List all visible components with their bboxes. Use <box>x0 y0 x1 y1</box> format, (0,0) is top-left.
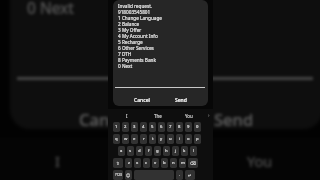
staticText: y <box>160 136 163 142</box>
staticText: 1 Change Language <box>118 15 162 21</box>
button[interactable]: The <box>142 113 173 119</box>
staticText: 0 <box>196 124 199 130</box>
staticText: l <box>193 148 195 154</box>
button[interactable]: 4 <box>140 122 147 132</box>
button[interactable]: a <box>118 146 125 156</box>
button[interactable]: More suggestions <box>204 112 213 119</box>
staticText: m <box>181 160 185 166</box>
button[interactable]: Emoji <box>125 170 132 180</box>
button[interactable]: z <box>125 158 132 168</box>
button[interactable]: b <box>161 158 168 168</box>
button[interactable]: n <box>170 158 177 168</box>
button[interactable]: Cancel <box>130 96 154 105</box>
button[interactable]: 6 <box>158 122 165 132</box>
button[interactable]: I <box>112 113 142 119</box>
staticText: The <box>154 113 162 119</box>
button[interactable]: u <box>167 134 174 144</box>
staticText: 0 Next <box>27 0 74 18</box>
staticText: 2 Balance <box>118 21 140 27</box>
staticText: 2 <box>124 124 127 130</box>
staticText: 0 Next <box>118 63 133 69</box>
staticText: 1 <box>115 124 118 130</box>
staticText: q <box>115 136 118 142</box>
button[interactable]: r <box>140 134 147 144</box>
button[interactable]: f <box>145 146 152 156</box>
staticText: o <box>187 136 190 142</box>
staticText: ↵ <box>188 173 192 178</box>
button[interactable]: t <box>149 134 156 144</box>
staticText: c <box>145 160 148 166</box>
staticText: w <box>124 136 128 142</box>
button[interactable]: d <box>136 146 143 156</box>
staticText: . <box>179 172 181 178</box>
staticText: Cancel <box>79 108 132 126</box>
staticText: 4 <box>142 124 145 130</box>
staticText: f <box>148 148 150 154</box>
staticText: ⇧ <box>116 161 120 166</box>
button[interactable]: e <box>131 134 138 144</box>
button[interactable]: j <box>172 146 179 156</box>
button[interactable]: Send <box>201 105 267 129</box>
staticText: 3 My Offer <box>118 27 142 33</box>
button[interactable]: I <box>6 151 108 171</box>
button[interactable]: 8 <box>176 122 183 132</box>
button[interactable]: y <box>158 134 165 144</box>
staticText: 5 <box>151 124 154 130</box>
button[interactable]: c <box>143 158 150 168</box>
staticText: u <box>169 136 172 142</box>
staticText: p <box>196 136 199 142</box>
button[interactable]: w <box>122 134 129 144</box>
button[interactable]: 2 <box>122 122 129 132</box>
button[interactable]: 0 <box>194 122 201 132</box>
button[interactable]: The <box>108 151 209 171</box>
button[interactable]: 3 <box>131 122 138 132</box>
button[interactable]: q <box>113 134 120 144</box>
button[interactable]: k <box>181 146 188 156</box>
staticText: ?123 <box>115 173 122 177</box>
staticText: I <box>126 113 128 119</box>
button[interactable]: h <box>163 146 170 156</box>
button[interactable]: m <box>179 158 186 168</box>
button[interactable]: Send <box>171 96 191 105</box>
button[interactable]: You <box>173 113 204 119</box>
button[interactable]: i <box>176 134 183 144</box>
staticText: Cancel <box>134 97 150 104</box>
staticText: 6 <box>160 124 163 130</box>
button[interactable]: s <box>127 146 134 156</box>
button[interactable]: Backspace <box>188 158 198 168</box>
button[interactable]: ?123 <box>113 170 123 180</box>
button[interactable]: Shift <box>113 158 123 168</box>
staticText: z <box>128 160 130 166</box>
staticText: Send <box>175 97 187 104</box>
staticText: I <box>55 151 60 171</box>
button[interactable]: p <box>194 134 201 144</box>
button[interactable]: g <box>154 146 161 156</box>
button[interactable]: x <box>134 158 141 168</box>
staticText: x <box>136 160 139 166</box>
button[interactable]: l <box>190 146 197 156</box>
staticText: t <box>152 136 154 142</box>
button[interactable]: 5 <box>149 122 156 132</box>
staticText: You <box>247 151 273 171</box>
staticText: 9 <box>187 124 190 130</box>
staticText: 8 Payments Bank <box>118 57 156 63</box>
button[interactable]: You <box>209 151 310 171</box>
staticText: 6 Other Services <box>118 45 154 51</box>
button[interactable]: 1 <box>113 122 120 132</box>
staticText: ☺ <box>126 173 131 178</box>
button[interactable]: o <box>185 134 192 144</box>
staticText: v <box>154 160 157 166</box>
button[interactable]: . <box>176 170 183 180</box>
staticText: b <box>163 160 166 166</box>
button[interactable]: Cancel <box>66 105 145 129</box>
button[interactable]: 7 <box>167 122 174 132</box>
staticText: a <box>120 148 123 154</box>
staticText: d <box>138 148 141 154</box>
button[interactable]: Enter <box>185 170 195 180</box>
staticText: ⌫ <box>190 161 196 166</box>
button[interactable]: v <box>152 158 159 168</box>
button[interactable]: 9 <box>185 122 192 132</box>
staticText: Invalid request. <box>118 3 153 9</box>
